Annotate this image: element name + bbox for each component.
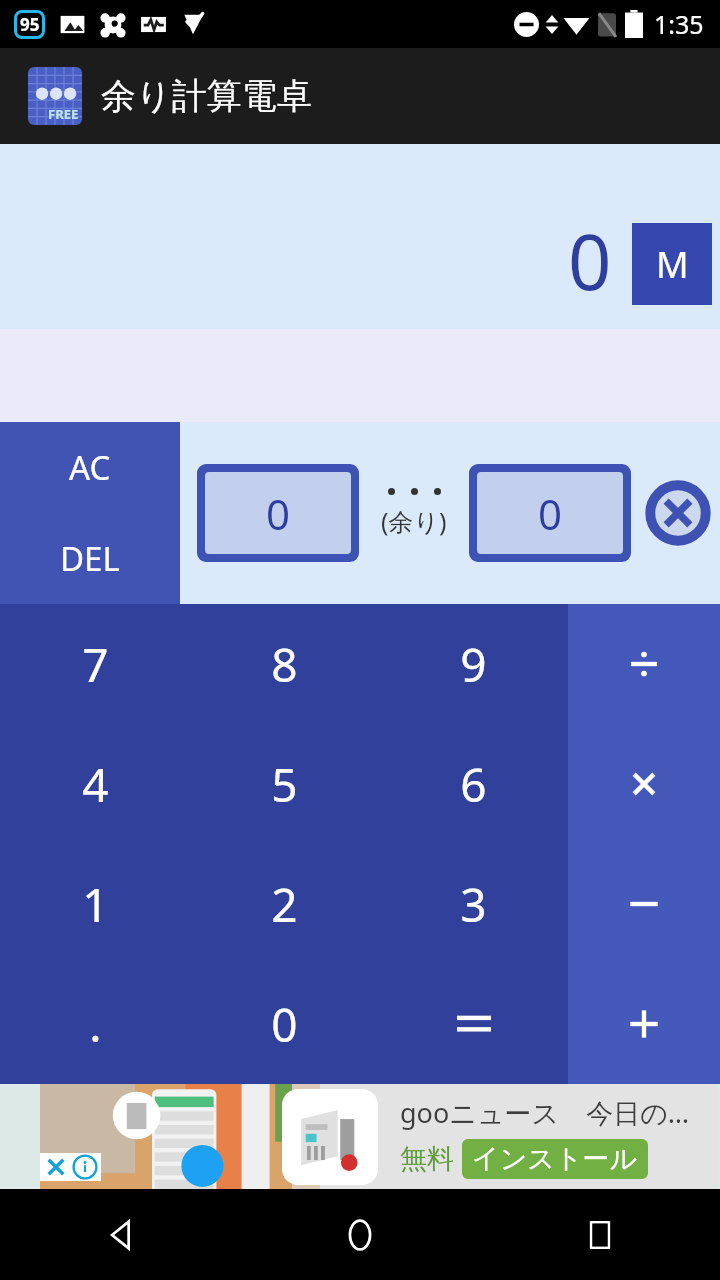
staticText: 2 (271, 873, 298, 936)
staticText: 0 (568, 209, 612, 313)
button[interactable]: 8 (190, 604, 379, 724)
button[interactable]: add (568, 964, 720, 1084)
button[interactable]: DEL (0, 513, 180, 604)
button[interactable]: 0 (477, 472, 623, 554)
staticText: FREE (48, 105, 79, 123)
staticText: 5 (271, 753, 298, 816)
button[interactable]: . (0, 964, 190, 1084)
staticText: 0 (266, 485, 291, 542)
staticText: DEL (60, 536, 120, 581)
button[interactable]: div (568, 604, 720, 724)
staticText: (余り) (381, 504, 447, 538)
button[interactable]: M (632, 223, 712, 305)
staticText: 7 (82, 633, 109, 696)
staticText: 1 (82, 873, 109, 936)
button[interactable]: 5 (190, 724, 379, 844)
button[interactable]: sub (568, 844, 720, 964)
staticText: 0 (271, 993, 298, 1056)
staticText: 6 (460, 753, 487, 816)
button[interactable]: Recents (480, 1189, 720, 1280)
staticText: AC (69, 445, 111, 490)
button[interactable]: 0 (205, 472, 351, 554)
button[interactable]: mul (568, 724, 720, 844)
staticText: 95 (20, 13, 40, 36)
button[interactable]: 2 (190, 844, 379, 964)
button[interactable]: 9 (379, 604, 568, 724)
staticText: 4 (82, 753, 109, 816)
button[interactable]: 7 (0, 604, 190, 724)
button[interactable]: インストール (472, 1142, 638, 1176)
button[interactable]: 3 (379, 844, 568, 964)
button[interactable]: 1 (0, 844, 190, 964)
staticText: インストール (472, 1142, 638, 1176)
button[interactable]: Clear (645, 480, 711, 546)
staticText: . (89, 993, 102, 1056)
button[interactable] (379, 964, 568, 1084)
button[interactable]: AC (0, 422, 180, 513)
button[interactable]: 0 (190, 964, 379, 1084)
staticText: 9 (460, 633, 487, 696)
button[interactable]: 6 (379, 724, 568, 844)
staticText: 1:35 (654, 7, 704, 41)
staticText: gooニュース 今日の… (400, 1094, 690, 1131)
button[interactable]: Home (240, 1189, 480, 1280)
staticText: 余り計算電卓 (101, 74, 312, 118)
staticText: M (656, 240, 689, 289)
staticText: 8 (271, 633, 298, 696)
button[interactable]: Back (0, 1189, 240, 1280)
staticText: 3 (460, 873, 487, 936)
staticText: 無料 (400, 1142, 454, 1176)
button[interactable]: 4 (0, 724, 190, 844)
staticText: 0 (538, 485, 563, 542)
